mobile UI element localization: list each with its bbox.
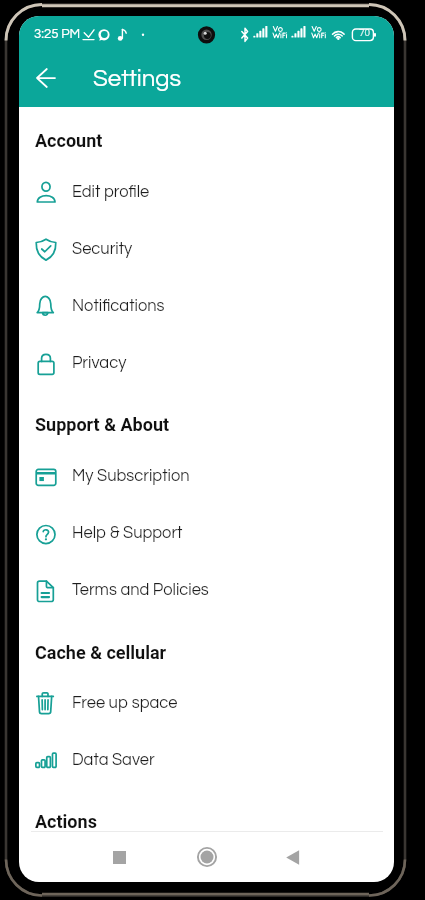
staticText: 3:25 PM xyxy=(34,27,81,41)
button[interactable]: Back xyxy=(272,837,312,877)
staticText: Terms and Policies xyxy=(72,581,209,598)
button[interactable]: My Subscription xyxy=(19,447,394,504)
button[interactable]: Free up space xyxy=(19,674,394,731)
staticText: Data Saver xyxy=(72,751,155,768)
staticText: My Subscription xyxy=(72,467,190,484)
button[interactable]: Security xyxy=(19,220,394,277)
staticText: Support & About xyxy=(35,414,170,435)
staticText: Edit profile xyxy=(72,183,150,200)
button[interactable]: Recent apps xyxy=(99,837,139,877)
button[interactable]: Edit profile xyxy=(19,163,394,220)
staticText: 70 xyxy=(359,28,370,38)
staticText: Privacy xyxy=(72,354,127,371)
button[interactable]: Privacy xyxy=(19,334,394,391)
button[interactable]: Terms and Policies xyxy=(19,561,394,618)
button[interactable]: Back xyxy=(26,58,66,98)
staticText: Security xyxy=(72,240,133,257)
button[interactable]: Data Saver xyxy=(19,731,394,788)
staticText: Notifications xyxy=(72,297,165,314)
staticText: Help & Support xyxy=(72,524,183,541)
button[interactable]: Notifications xyxy=(19,277,394,334)
button[interactable]: Help & Support xyxy=(19,504,394,561)
staticText: Account xyxy=(35,130,103,151)
staticText: Actions xyxy=(35,811,97,832)
staticText: Free up space xyxy=(72,694,178,711)
staticText: Settings xyxy=(93,66,182,91)
staticText: Cache & cellular xyxy=(35,642,167,663)
button[interactable]: Home xyxy=(187,837,227,877)
